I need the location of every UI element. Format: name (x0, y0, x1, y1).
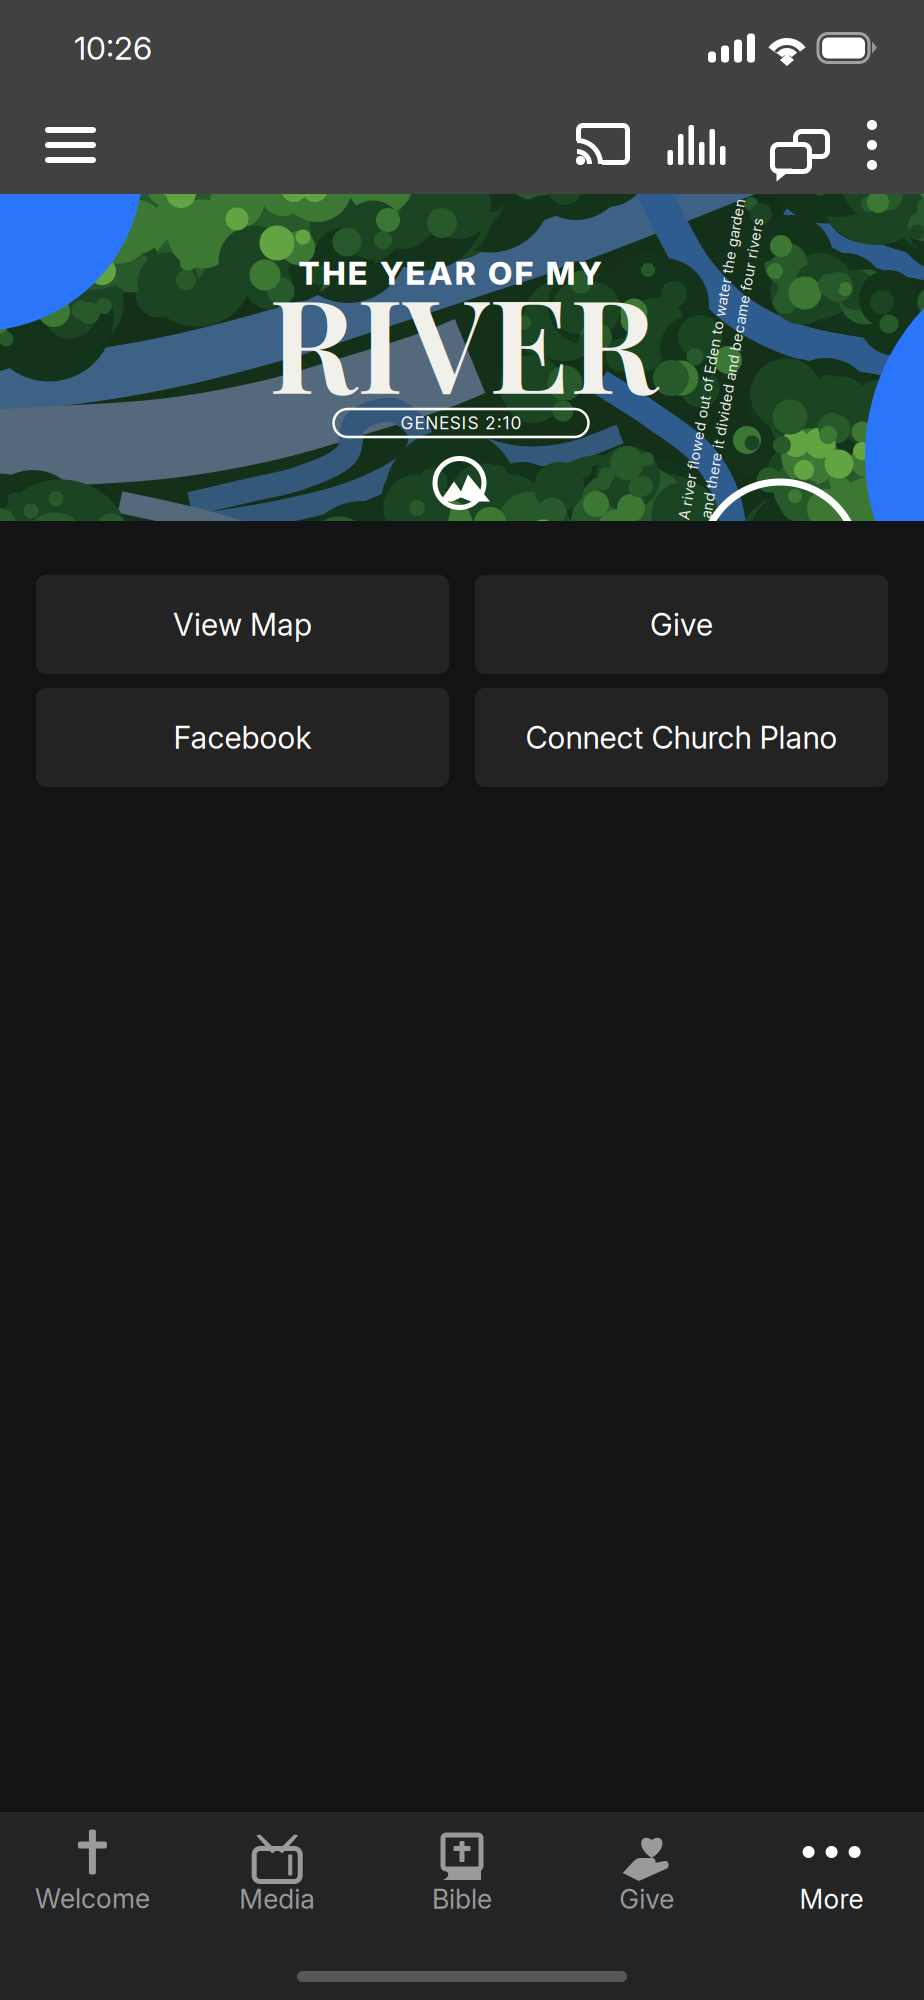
staticText: 10:26 (74, 29, 152, 67)
button[interactable]: Cast to device (557, 96, 649, 194)
button[interactable]: More options (838, 96, 906, 194)
staticText: Connect Church Plano (525, 719, 837, 756)
staticText: Welcome (35, 1882, 150, 1915)
button[interactable]: Now playing (649, 96, 744, 194)
staticText: Bible (432, 1883, 492, 1915)
button[interactable]: Menu (24, 96, 117, 193)
button[interactable]: Messages (744, 96, 838, 193)
button[interactable]: Media (185, 1812, 370, 1927)
button[interactable]: Facebook (36, 688, 449, 787)
button[interactable]: Connect Church Plano (475, 688, 888, 787)
button[interactable]: View Map (36, 575, 449, 674)
staticText: GENESIS 2:10 (401, 412, 521, 433)
button[interactable]: More (739, 1812, 924, 1927)
staticText: RIVER (268, 254, 657, 426)
staticText: View Map (173, 606, 312, 643)
staticText: A river flowed out of Eden to water the … (549, 350, 875, 368)
staticText: Facebook (173, 719, 311, 756)
staticText: Media (239, 1883, 315, 1915)
staticText: THE YEAR OF MY (299, 254, 601, 292)
button[interactable]: Give (475, 575, 888, 674)
staticText: Give (650, 606, 713, 643)
staticText: More (800, 1883, 864, 1915)
button[interactable]: Welcome (0, 1812, 185, 1927)
button[interactable]: Bible (370, 1812, 554, 1927)
button[interactable]: Give (554, 1812, 739, 1927)
staticText: Give (619, 1883, 674, 1915)
staticText: and there it divided and became four riv… (579, 359, 884, 377)
